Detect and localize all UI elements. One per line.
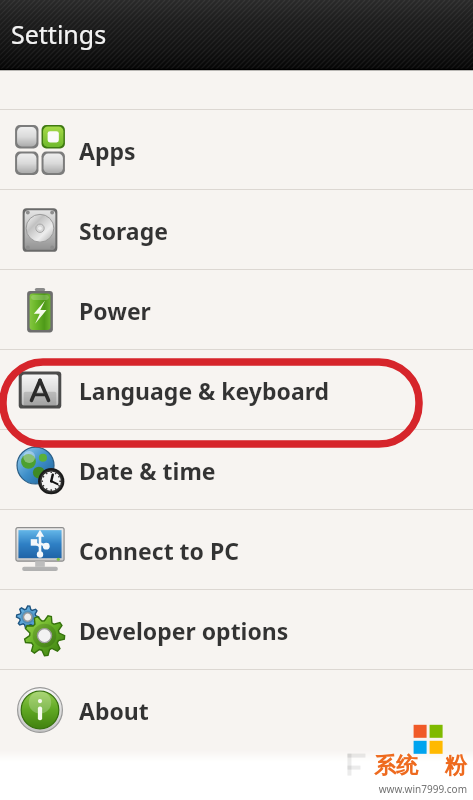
button[interactable]: Call: [0, 70, 473, 110]
staticText: Date & time: [79, 455, 216, 486]
staticText: Developer options: [79, 615, 289, 646]
button[interactable]: Developer options: [0, 590, 473, 670]
button[interactable]: Language & keyboard: [0, 350, 473, 430]
staticText: Power: [79, 295, 151, 326]
button[interactable]: Storage: [0, 190, 473, 270]
button[interactable]: Power: [0, 270, 473, 350]
button[interactable]: About: [0, 670, 473, 750]
button[interactable]: Date & time: [0, 430, 473, 510]
staticText: Apps: [79, 135, 136, 166]
button[interactable]: Apps: [0, 110, 473, 190]
staticText: Connect to PC: [79, 535, 239, 566]
staticText: www.win7999.com: [378, 782, 467, 796]
staticText: 粉: [445, 752, 467, 780]
staticText: About: [79, 695, 149, 726]
staticText: Storage: [79, 215, 168, 246]
staticText: Settings: [11, 17, 107, 51]
staticText: 系统: [374, 752, 418, 780]
staticText: Language & keyboard: [79, 375, 330, 406]
button[interactable]: Connect to PC: [0, 510, 473, 590]
staticText: Call: [79, 35, 122, 66]
